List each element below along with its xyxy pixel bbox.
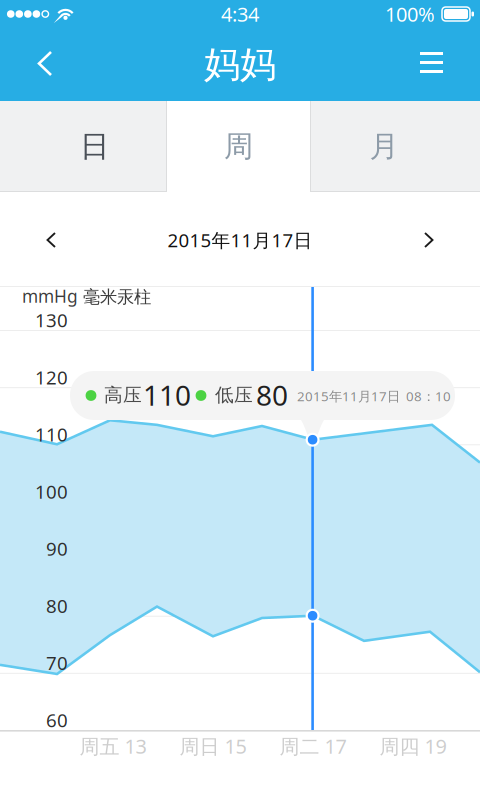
staticText: 110: [143, 376, 191, 414]
staticText: 120: [35, 365, 68, 389]
staticText: 90: [46, 536, 68, 561]
staticText: 100: [35, 479, 68, 504]
staticText: 60: [46, 708, 68, 732]
staticText: 2015年11月17日: [167, 228, 312, 252]
staticText: 妈妈: [204, 42, 276, 87]
staticText: 4:34: [221, 1, 259, 27]
staticText: 周二 17: [279, 733, 346, 759]
staticText: 80: [46, 593, 68, 618]
staticText: 周四 19: [379, 733, 446, 759]
staticText: 110: [35, 422, 68, 447]
button[interactable]: Next day: [380, 192, 480, 286]
button[interactable]: 日: [0, 101, 167, 192]
staticText: 高压: [104, 383, 142, 406]
staticText: 周: [224, 128, 253, 164]
staticText: mmHg 毫米汞柱: [22, 284, 151, 307]
staticText: 周日 15: [179, 733, 246, 759]
button[interactable]: 周: [167, 101, 310, 192]
button[interactable]: Menu: [392, 28, 480, 101]
staticText: 低压: [215, 383, 253, 406]
staticText: 100%: [385, 1, 435, 27]
staticText: 80: [256, 376, 288, 414]
staticText: 130: [35, 308, 68, 332]
staticText: 月: [369, 128, 398, 164]
button[interactable]: Previous day: [0, 192, 100, 286]
staticText: 日: [80, 128, 109, 164]
button[interactable]: Back: [0, 28, 92, 101]
staticText: 70: [46, 650, 68, 675]
staticText: 周五 13: [79, 733, 146, 759]
button[interactable]: 月: [310, 101, 480, 192]
staticText: 2015年11月17日 08：10: [297, 387, 451, 405]
